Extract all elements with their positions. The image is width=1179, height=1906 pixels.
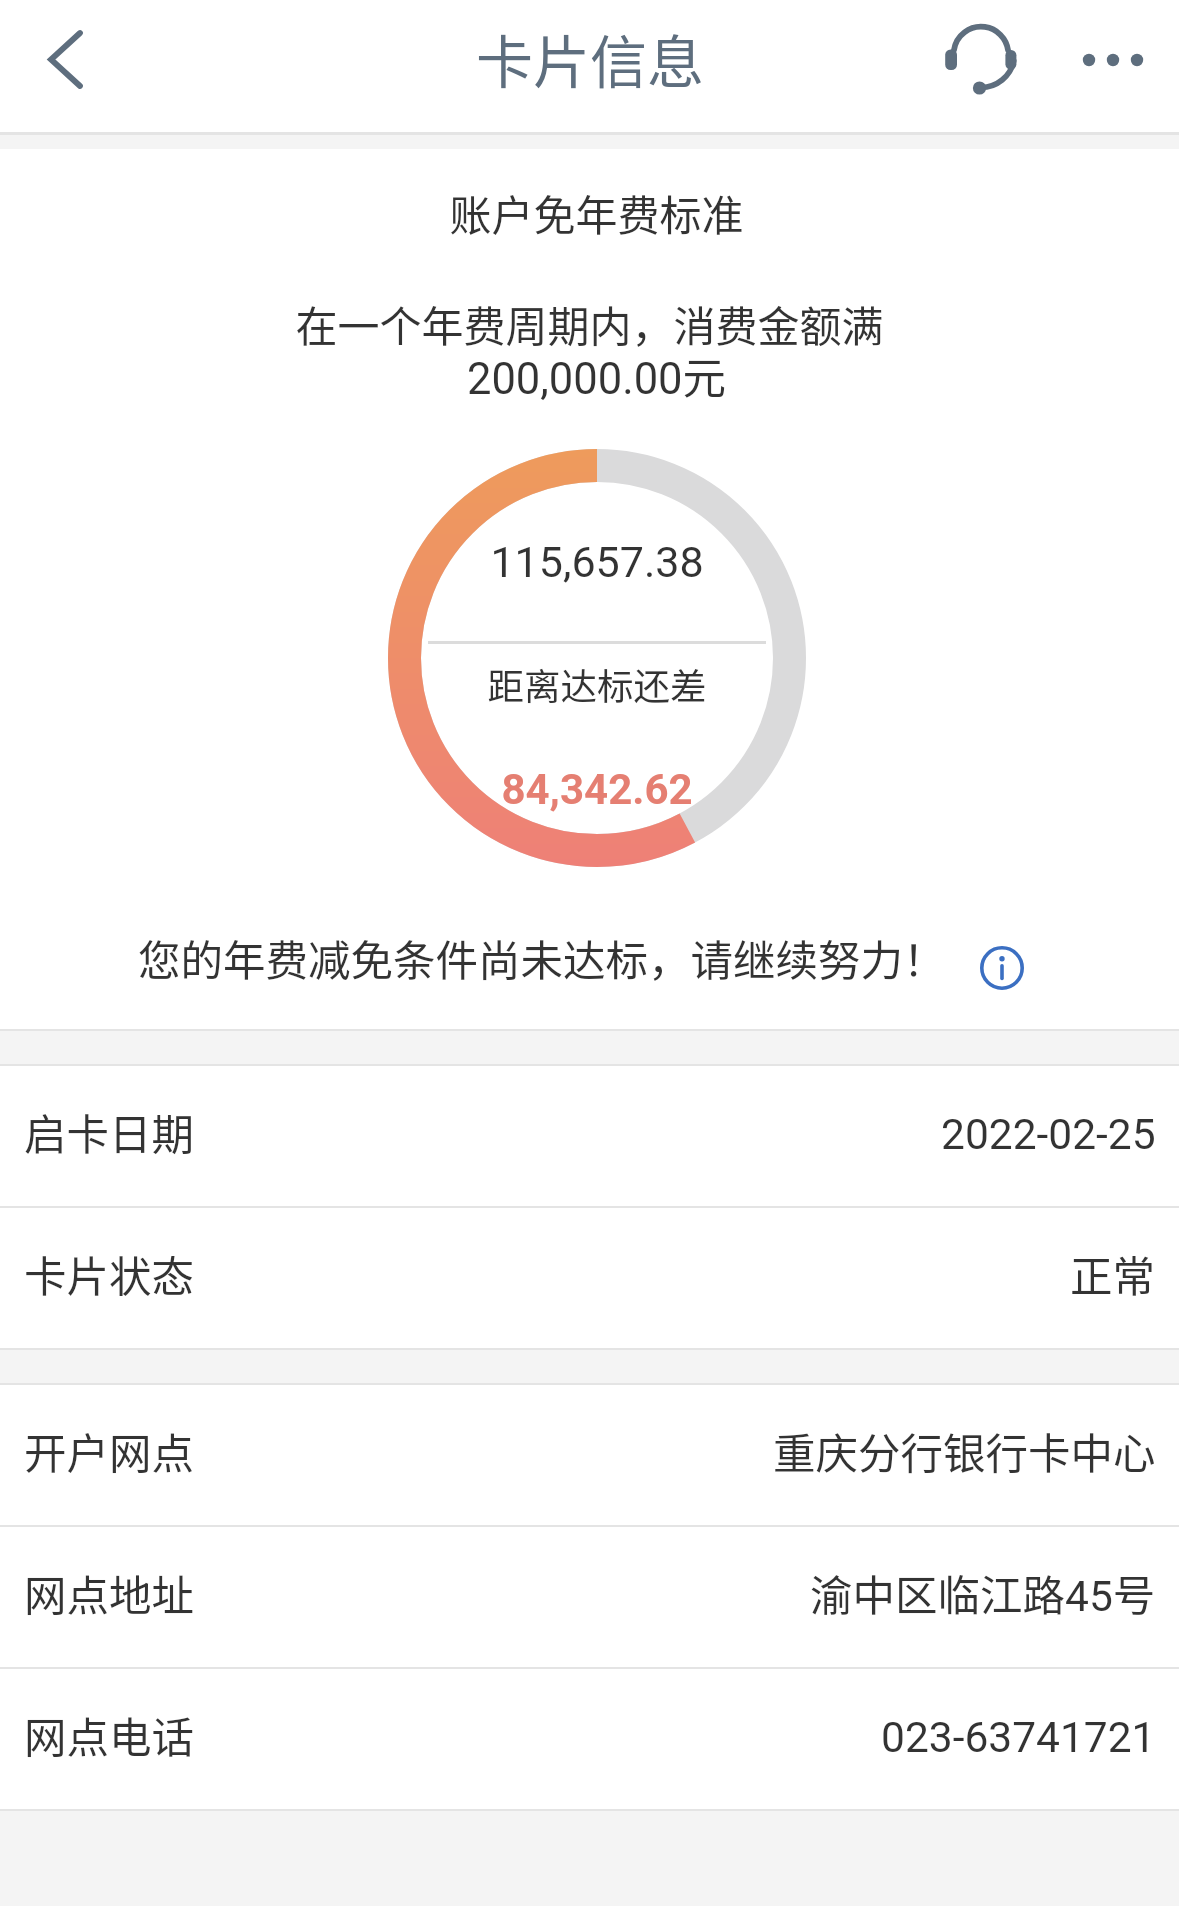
staticText: 023-63741721	[881, 1713, 1156, 1763]
staticText: 账户免年费标准	[7, 182, 1179, 243]
button[interactable]: 启卡日期	[0, 1066, 1179, 1206]
staticText: 网点地址	[24, 1562, 195, 1624]
staticText: 卡片信息	[476, 17, 704, 100]
button[interactable]: 开户网点	[0, 1385, 1179, 1525]
staticText: 重庆分行银行卡中心	[773, 1420, 1156, 1482]
staticText: 网点电话	[24, 1704, 195, 1766]
staticText: 卡片状态	[24, 1243, 195, 1305]
staticText: 开户网点	[24, 1420, 195, 1482]
staticText: 在一个年费周期内，消费金额满	[0, 293, 1179, 354]
staticText: 启卡日期	[24, 1101, 195, 1163]
staticText: 正常	[1070, 1243, 1156, 1305]
staticText: 200,000.00元	[7, 344, 1179, 407]
button[interactable]: More options	[1052, 6, 1162, 126]
staticText: 距离达标还差	[388, 658, 806, 711]
button[interactable]: More information	[968, 934, 1036, 1002]
staticText: 2022-02-25	[941, 1110, 1156, 1160]
staticText: 115,657.38	[388, 537, 806, 587]
staticText: 84,342.62	[388, 765, 806, 814]
button[interactable]: Customer service	[935, 0, 1039, 120]
button[interactable]: 网点地址	[0, 1527, 1179, 1667]
button[interactable]: 卡片状态	[0, 1208, 1179, 1348]
staticText: 渝中区临江路45号	[810, 1562, 1156, 1624]
button[interactable]: 网点电话	[0, 1669, 1179, 1809]
button[interactable]: Back	[0, 0, 132, 133]
staticText: 您的年费减免条件尚未达标，请继续努力！	[138, 927, 946, 989]
